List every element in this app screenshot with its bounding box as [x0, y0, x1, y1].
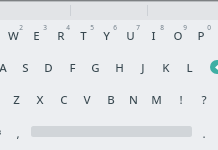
button[interactable]: Z	[5, 84, 28, 116]
button[interactable]: N	[122, 84, 145, 116]
staticText: !	[179, 92, 183, 108]
button[interactable]: U	[119, 20, 142, 52]
staticText: Y	[103, 28, 110, 44]
staticText: ?123	[0, 127, 2, 137]
staticText: D	[44, 60, 53, 76]
staticText: T	[80, 28, 87, 44]
staticText: Z	[13, 92, 20, 108]
staticText: V	[83, 92, 91, 108]
staticText: 4	[66, 23, 70, 32]
staticText: 5	[90, 23, 94, 32]
button[interactable]: T	[72, 20, 95, 52]
button[interactable]: D	[37, 52, 60, 84]
button[interactable]: B	[99, 84, 122, 116]
staticText: ?	[201, 92, 207, 108]
button[interactable]: ?	[192, 84, 215, 116]
button[interactable]: O	[166, 20, 189, 52]
button[interactable]: L	[178, 52, 201, 84]
staticText: 6	[113, 23, 117, 32]
button[interactable]: A	[0, 52, 14, 84]
staticText: J	[141, 60, 145, 76]
staticText: U	[126, 28, 135, 44]
button[interactable]: .	[192, 118, 215, 150]
staticText: .	[202, 126, 206, 142]
staticText: N	[129, 92, 138, 108]
button[interactable]: M	[145, 84, 168, 116]
staticText: I	[151, 28, 156, 44]
button[interactable]: E	[25, 20, 48, 52]
staticText: L	[186, 60, 193, 76]
staticText: W	[8, 28, 19, 44]
button[interactable]: R	[49, 20, 72, 52]
button[interactable]: W	[2, 20, 25, 52]
staticText: X	[36, 92, 44, 108]
staticText: R	[57, 28, 65, 44]
button[interactable]: !	[169, 84, 192, 116]
button[interactable]: Enter	[210, 60, 218, 74]
staticText: H	[115, 60, 124, 76]
button[interactable]: F	[61, 52, 84, 84]
staticText: M	[151, 92, 162, 108]
staticText: S	[22, 60, 29, 76]
staticText: A	[0, 60, 7, 76]
staticText: 9	[183, 23, 187, 32]
staticText: O	[173, 28, 183, 44]
button[interactable]: V	[75, 84, 98, 116]
button[interactable]: P	[189, 20, 212, 52]
button[interactable]: X	[28, 84, 51, 116]
staticText: ,	[16, 126, 20, 142]
staticText: F	[69, 60, 76, 76]
staticText: 0	[207, 23, 211, 32]
button[interactable]: K	[154, 52, 177, 84]
button[interactable]: I	[142, 20, 165, 52]
staticText: 8	[160, 23, 164, 32]
button[interactable]: H	[108, 52, 131, 84]
staticText: 3	[43, 23, 47, 32]
button[interactable]: C	[52, 84, 75, 116]
staticText: K	[162, 60, 170, 76]
staticText: 7	[136, 23, 140, 32]
button[interactable]: ,	[6, 118, 29, 150]
button[interactable]: S	[14, 52, 37, 84]
staticText: C	[60, 92, 68, 108]
staticText: P	[197, 28, 205, 44]
button[interactable]: J	[131, 52, 154, 84]
staticText: 2	[19, 23, 23, 32]
staticText: B	[107, 92, 115, 108]
button[interactable]: Symbols	[0, 116, 2, 148]
staticText: E	[33, 28, 40, 44]
staticText: G	[91, 60, 100, 76]
button[interactable]: Y	[95, 20, 118, 52]
button[interactable]: G	[84, 52, 107, 84]
